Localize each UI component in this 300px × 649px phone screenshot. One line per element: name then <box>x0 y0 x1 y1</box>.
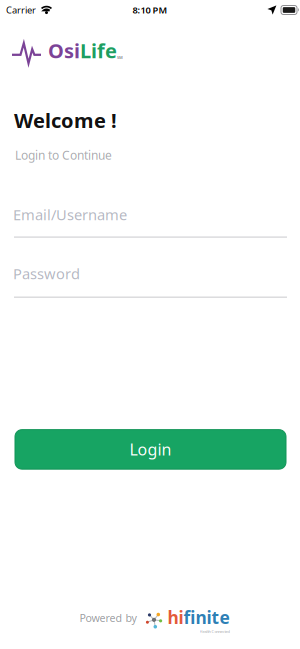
staticText: 8:10 PM <box>132 4 167 16</box>
staticText: Powered by <box>79 611 136 625</box>
staticText: Carrier <box>6 4 36 16</box>
staticText: Health Connected <box>199 629 229 634</box>
staticText: SM <box>117 55 123 60</box>
staticText: Welcome ! <box>14 107 117 134</box>
button[interactable]: Email/Username <box>0 205 300 238</box>
staticText: Login <box>129 439 171 460</box>
staticText: Login to Continue <box>15 147 112 163</box>
button[interactable]: Login <box>15 430 286 469</box>
staticText: Life <box>80 37 117 64</box>
staticText: Osi <box>48 37 80 64</box>
staticText: Email/Username <box>13 205 127 224</box>
staticText: finite <box>183 606 229 629</box>
staticText: hi <box>167 606 183 629</box>
staticText: Password <box>13 264 80 283</box>
button[interactable]: Password <box>0 264 300 298</box>
button[interactable]: Powered by hifinite <box>70 606 229 634</box>
